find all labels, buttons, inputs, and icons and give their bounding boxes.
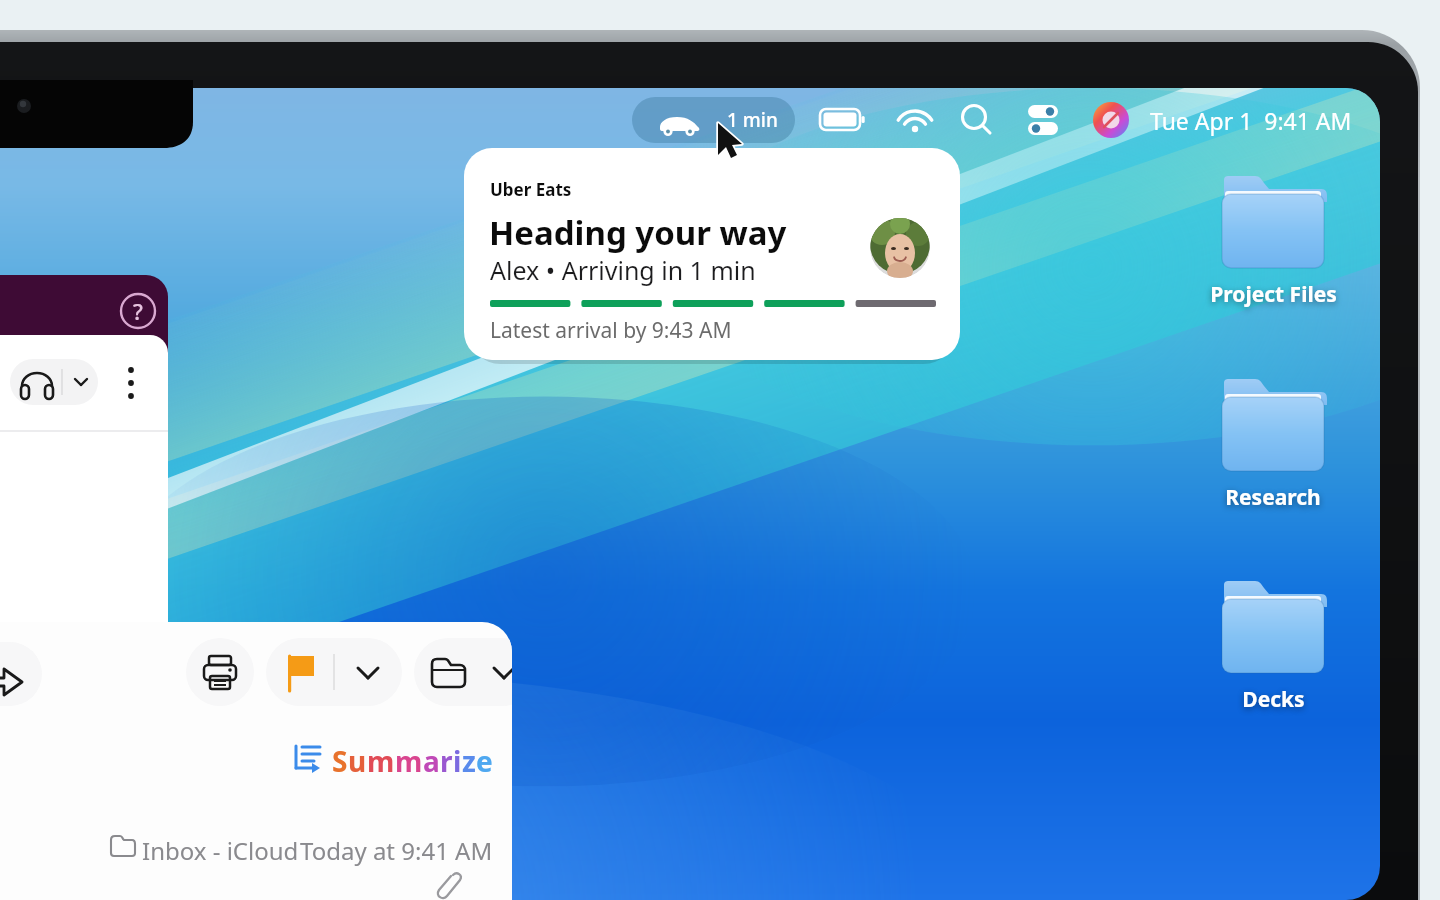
button[interactable]: Help xyxy=(120,293,156,329)
staticText: m xyxy=(367,742,395,780)
button[interactable]: Control Center xyxy=(1026,103,1062,137)
button[interactable]: Project Files xyxy=(1203,172,1343,312)
staticText: u xyxy=(348,742,367,780)
staticText: e xyxy=(476,742,493,780)
staticText: a xyxy=(423,742,440,780)
staticText: Inbox - iCloud xyxy=(142,834,299,867)
button[interactable]: Spotlight Search xyxy=(958,101,996,139)
button[interactable]: Uber Eats xyxy=(464,148,960,360)
button[interactable]: Forward xyxy=(0,642,42,706)
staticText: Alex • Arriving in 1 min xyxy=(490,253,756,287)
button[interactable]: S xyxy=(292,740,482,784)
button[interactable]: Help xyxy=(0,275,168,635)
button[interactable]: Print xyxy=(186,638,254,706)
staticText: m xyxy=(395,742,423,780)
staticText: 1 min xyxy=(727,107,778,133)
button[interactable]: Decks xyxy=(1203,577,1343,717)
button[interactable]: Tue Apr 1 9:41 AM xyxy=(1150,105,1352,136)
staticText: Project Files xyxy=(1210,280,1337,309)
button[interactable]: Forward xyxy=(0,622,512,900)
staticText: Heading your way xyxy=(489,210,787,255)
button[interactable]: Listen xyxy=(10,359,98,405)
button[interactable]: Move to folder xyxy=(414,638,482,706)
staticText: Uber Eats xyxy=(490,178,572,201)
button[interactable]: Research xyxy=(1203,375,1343,515)
staticText: ? xyxy=(133,296,143,326)
staticText: i xyxy=(453,742,462,780)
staticText: Decks xyxy=(1242,685,1305,714)
staticText: Today at 9:41 AM xyxy=(300,834,493,867)
button[interactable]: More options xyxy=(116,363,146,403)
button[interactable]: Uber Eats delivery, 1 minute xyxy=(632,97,795,143)
staticText: Latest arrival by 9:43 AM xyxy=(490,316,732,345)
staticText: Research xyxy=(1225,483,1321,512)
button[interactable]: Flag xyxy=(266,638,334,706)
button[interactable]: Wi-Fi xyxy=(896,103,934,137)
button[interactable]: Flag options xyxy=(334,638,402,706)
staticText: r xyxy=(440,742,453,780)
button[interactable]: Siri xyxy=(1093,102,1129,138)
staticText: z xyxy=(462,742,476,780)
button[interactable]: Folder options xyxy=(474,638,512,706)
staticText: S xyxy=(332,742,348,780)
button[interactable]: Battery xyxy=(818,104,866,136)
